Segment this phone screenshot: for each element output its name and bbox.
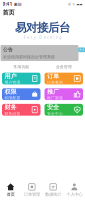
staticText: 推广渠道 (47, 96, 63, 100)
button[interactable]: 财务 (2, 104, 40, 116)
staticText: 订单管理 (24, 192, 40, 197)
button[interactable]: 数据统计 (42, 183, 64, 197)
staticText: 订单 (47, 72, 59, 80)
staticText: 个人中心 (66, 192, 82, 197)
staticText: 财务结算 (4, 111, 20, 116)
staticText: 安全中心 (47, 111, 63, 116)
staticText: 财务 (4, 103, 16, 111)
staticText: 推广 (47, 88, 59, 95)
staticText: 业务管理 (56, 64, 72, 69)
staticText: ▣▤ (14, 2, 22, 6)
staticText: 常用功能 (13, 64, 29, 69)
button[interactable]: 用户 (2, 73, 40, 84)
button[interactable]: 推广 (44, 88, 83, 100)
button[interactable]: 订单管理 (21, 183, 42, 197)
button[interactable]: 首页 (0, 183, 21, 197)
staticText: 用户 (4, 72, 16, 80)
staticText: 欢迎使用易对接后台管理系统 (3, 54, 55, 59)
button[interactable]: 订单 (44, 73, 83, 84)
staticText: ·ıl ⌾ ▰▰ (67, 1, 82, 7)
staticText: 易对接后台 (15, 20, 70, 35)
staticText: 更多 (79, 48, 85, 52)
button[interactable]: 更多 (78, 47, 85, 52)
staticText: 用户管理 (4, 80, 20, 85)
staticText: 安全 (47, 103, 59, 111)
staticText: 首页 (7, 192, 15, 197)
button[interactable]: 个人中心 (64, 183, 85, 197)
staticText: 9:41 (2, 1, 12, 7)
staticText: 首页 (2, 9, 14, 16)
staticText: 权限 (4, 88, 16, 95)
staticText: Easy Docking (24, 35, 61, 40)
staticText: 公告 (3, 47, 13, 53)
button[interactable]: 权限 (2, 88, 40, 100)
button[interactable]: 安全 (44, 104, 83, 116)
staticText: 订单查询 (47, 80, 63, 85)
staticText: 数据统计 (45, 192, 61, 197)
staticText: 权限配置 (4, 96, 20, 100)
